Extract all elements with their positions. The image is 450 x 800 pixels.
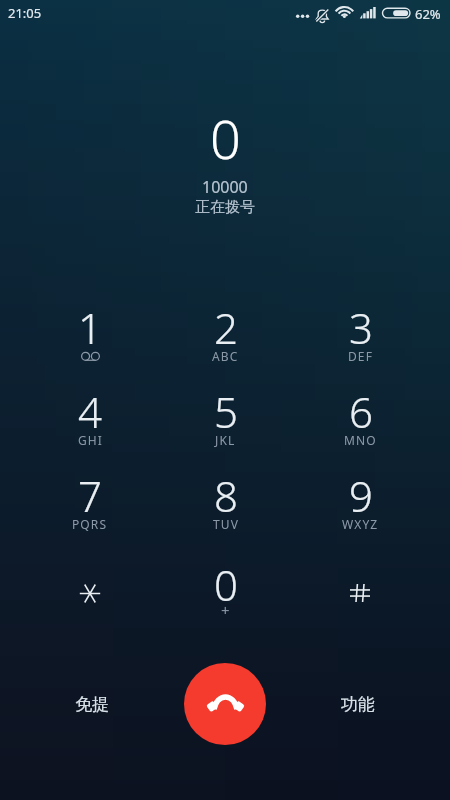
staticText: MNO — [344, 432, 377, 448]
button[interactable]: 1 — [22, 298, 158, 382]
staticText: 4 — [78, 383, 102, 440]
staticText: 2 — [214, 299, 238, 356]
button[interactable]: 8 — [158, 466, 293, 550]
button[interactable]: 6 — [293, 382, 428, 466]
staticText: 功能 — [341, 694, 375, 715]
button[interactable]: 9 — [293, 466, 428, 550]
staticText: 0 — [214, 556, 238, 613]
staticText: 7 — [78, 467, 102, 524]
staticText: 62% — [415, 5, 441, 23]
staticText: WXYZ — [342, 516, 379, 532]
staticText: 6 — [349, 383, 373, 440]
staticText: GHI — [78, 432, 103, 448]
button[interactable]: End call — [184, 663, 266, 745]
staticText: 10000 — [202, 176, 248, 198]
button[interactable]: 3 — [293, 298, 428, 382]
button[interactable]: 2 — [158, 298, 293, 382]
button[interactable]: star — [22, 550, 158, 634]
staticText: JKL — [215, 432, 236, 448]
staticText: ABC — [212, 348, 239, 364]
staticText: 9 — [349, 467, 373, 524]
staticText: 5 — [214, 383, 238, 440]
staticText: TUV — [213, 516, 239, 532]
staticText: 免提 — [75, 694, 109, 715]
staticText: + — [221, 600, 230, 620]
button[interactable]: 5 — [158, 382, 293, 466]
button[interactable]: 免提 — [42, 672, 142, 736]
staticText: 21:05 — [8, 4, 42, 22]
staticText: 8 — [214, 467, 238, 524]
staticText: DEF — [348, 348, 373, 364]
staticText: 1 — [78, 299, 102, 356]
button[interactable]: 0 — [158, 550, 293, 634]
button[interactable]: 7 — [22, 466, 158, 550]
button[interactable]: 4 — [22, 382, 158, 466]
staticText: 正在拨号 — [195, 198, 255, 217]
button[interactable]: pound — [293, 550, 428, 634]
button[interactable]: 功能 — [308, 672, 408, 736]
staticText: 3 — [349, 299, 373, 356]
staticText: 0 — [210, 101, 241, 175]
staticText: PQRS — [72, 516, 108, 532]
